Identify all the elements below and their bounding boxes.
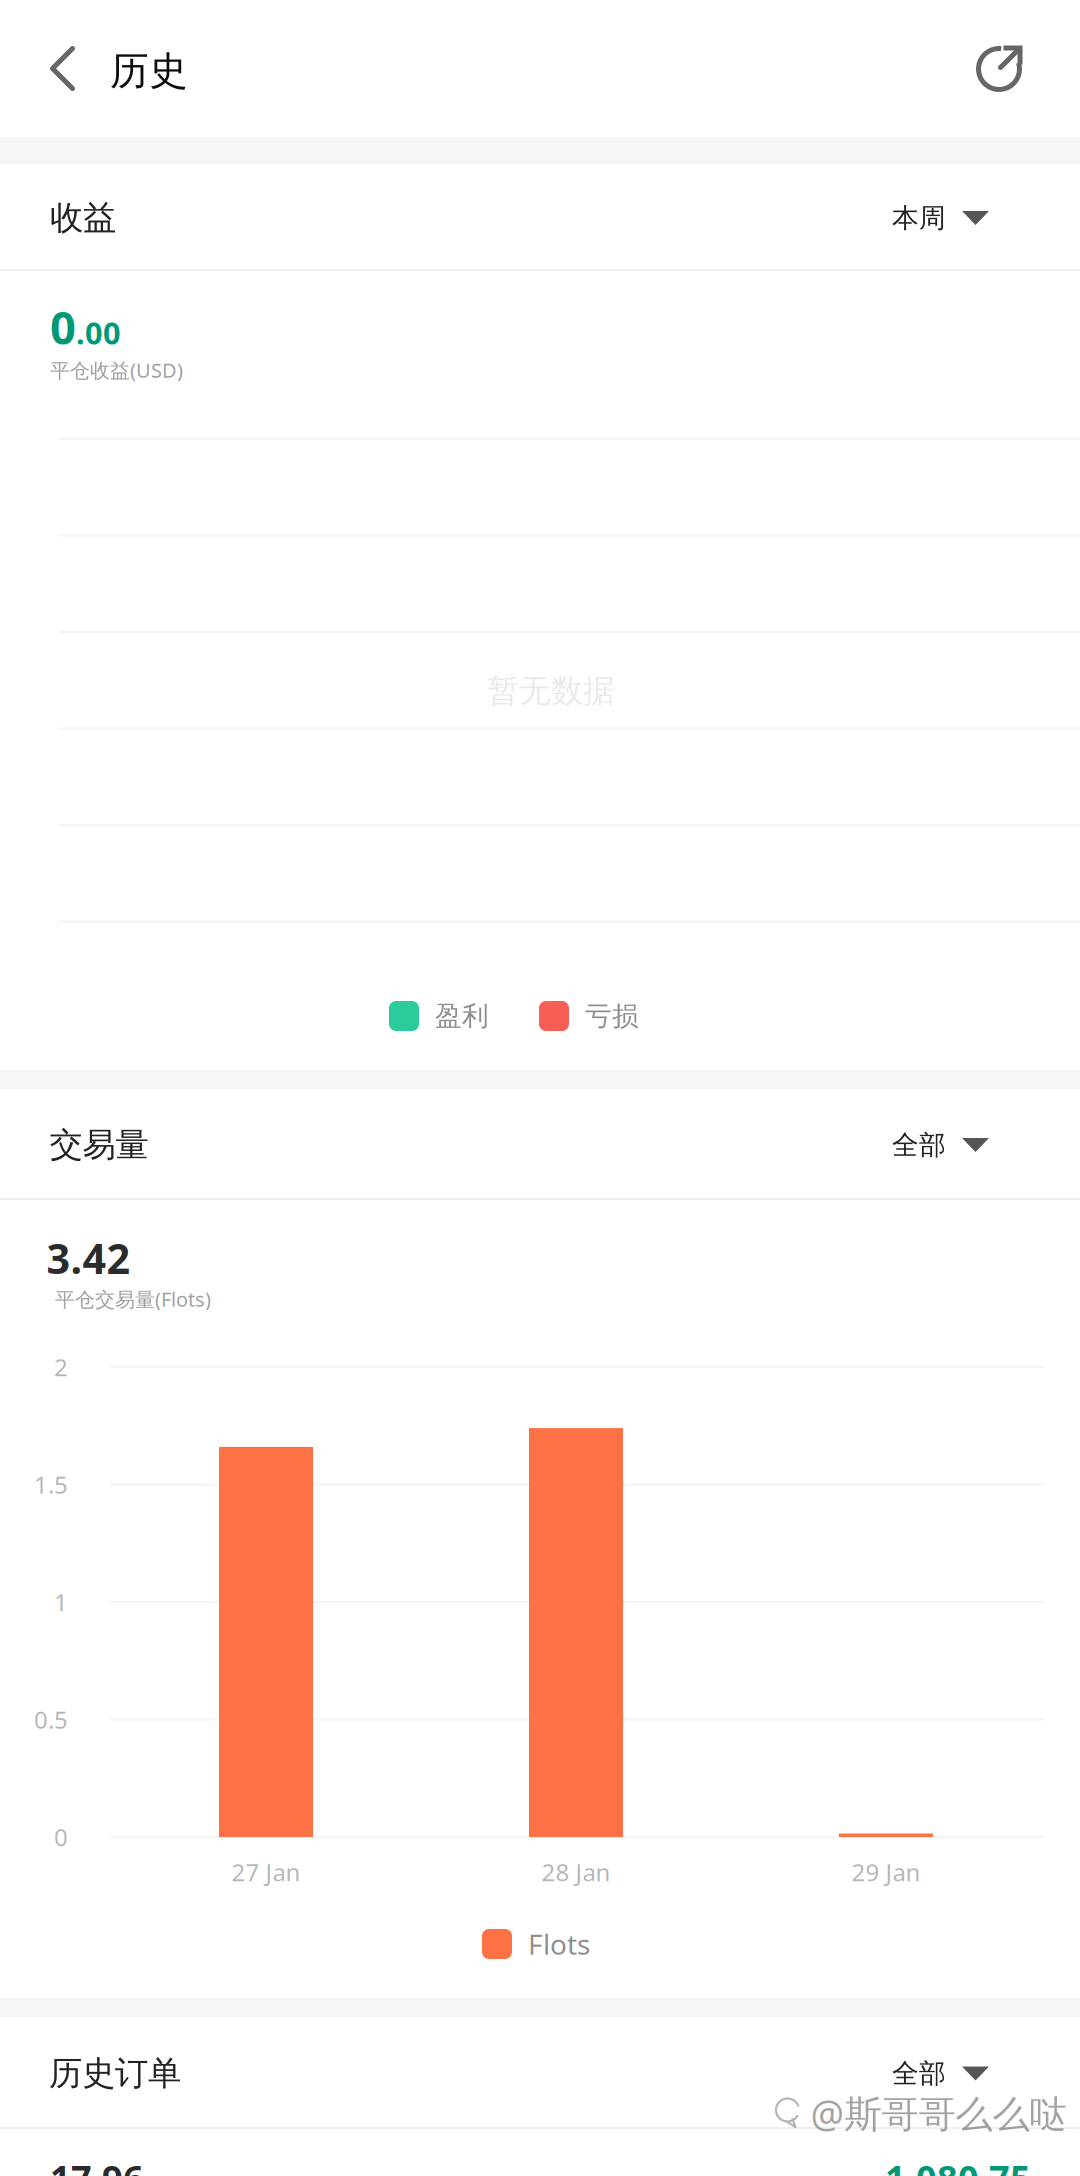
button[interactable]: 全部 xyxy=(842,1103,1038,1187)
staticText: Flots xyxy=(528,1925,590,1963)
staticText: 平仓交易量(Flots) xyxy=(55,1286,211,1312)
staticText: 0.5 xyxy=(34,1704,68,1735)
staticText: 0 xyxy=(54,1821,68,1853)
staticText: 2 xyxy=(54,1351,68,1383)
staticText: 0 xyxy=(50,297,76,357)
staticText: 盈利 xyxy=(435,1000,489,1032)
staticText: 全部 xyxy=(892,2057,946,2090)
staticText: 平仓收益(USD) xyxy=(50,357,183,383)
staticText: .00 xyxy=(76,312,121,353)
button[interactable]: 本周 xyxy=(842,176,1038,260)
staticText: 收益 xyxy=(50,197,116,238)
staticText: 亏损 xyxy=(585,1000,639,1032)
staticText: 1,080.75 xyxy=(885,2154,1031,2176)
button[interactable]: 全部 xyxy=(842,2031,1038,2116)
staticText: 交易量 xyxy=(49,1124,148,1165)
staticText: 本周 xyxy=(892,202,946,234)
staticText: 历史 xyxy=(110,47,188,95)
staticText: 3.42 xyxy=(46,1231,130,1285)
button[interactable]: Share xyxy=(947,0,1054,137)
staticText: @斯哥哥么么哒 xyxy=(810,2088,1066,2138)
staticText: 27 Jan xyxy=(231,1856,300,1888)
staticText: 历史订单 xyxy=(49,2053,181,2094)
staticText: 全部 xyxy=(892,1129,946,1161)
staticText: 17.96 xyxy=(50,2154,144,2176)
staticText: 29 Jan xyxy=(851,1856,920,1888)
staticText: 1 xyxy=(54,1586,68,1618)
staticText: 暂无数据 xyxy=(487,671,615,711)
button[interactable]: Back xyxy=(20,1,105,136)
staticText: 1.5 xyxy=(34,1469,68,1500)
staticText: 28 Jan xyxy=(541,1856,610,1888)
